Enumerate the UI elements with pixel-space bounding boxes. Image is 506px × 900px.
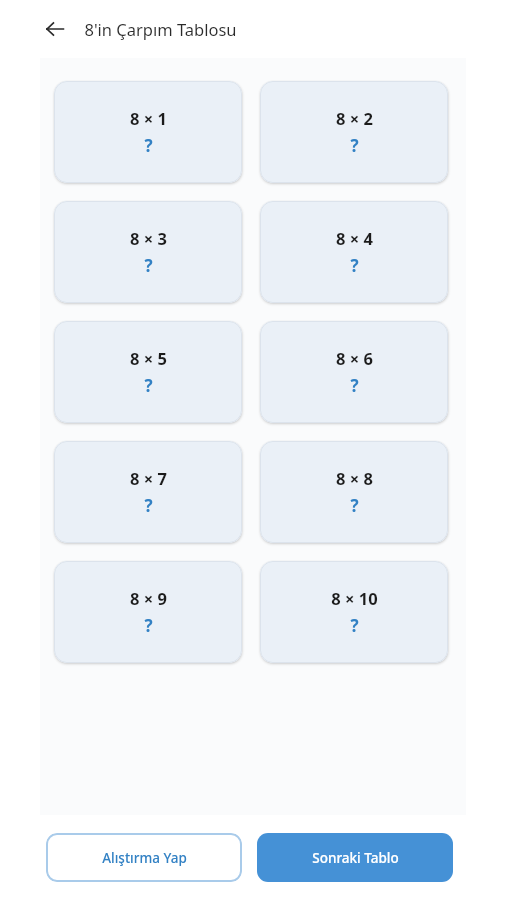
staticText: ? — [144, 254, 153, 277]
button[interactable]: Sonraki Tablo — [257, 833, 453, 882]
staticText: ? — [350, 254, 359, 277]
button[interactable]: 8 × 3 — [54, 201, 242, 303]
staticText: Alıştırma Yap — [102, 849, 187, 867]
button[interactable]: 8 × 8 — [260, 441, 448, 543]
button[interactable]: 8 × 4 — [260, 201, 448, 303]
button[interactable]: 8 × 9 — [54, 561, 242, 663]
staticText: ? — [350, 614, 359, 637]
staticText: ? — [350, 494, 359, 517]
staticText: ? — [350, 134, 359, 157]
staticText: 8 × 7 — [130, 467, 167, 489]
button[interactable]: Back — [36, 10, 74, 48]
staticText: ? — [144, 614, 153, 637]
button[interactable]: 8 × 1 — [54, 81, 242, 183]
staticText: ? — [350, 374, 359, 397]
staticText: 8'in Çarpım Tablosu — [84, 18, 237, 40]
staticText: ? — [144, 494, 153, 517]
staticText: 8 × 8 — [336, 467, 373, 489]
staticText: 8 × 4 — [336, 227, 373, 249]
button[interactable]: 8 × 5 — [54, 321, 242, 423]
button[interactable]: 8 × 6 — [260, 321, 448, 423]
button[interactable]: 8 × 10 — [260, 561, 448, 663]
staticText: 8 × 10 — [331, 587, 378, 609]
staticText: 8 × 2 — [336, 107, 373, 129]
button[interactable]: 8 × 7 — [54, 441, 242, 543]
button[interactable]: Alıştırma Yap — [46, 833, 242, 882]
button[interactable]: 8 × 2 — [260, 81, 448, 183]
staticText: 8 × 5 — [130, 347, 167, 369]
staticText: 8 × 9 — [130, 587, 167, 609]
staticText: Sonraki Tablo — [312, 849, 399, 867]
staticText: ? — [144, 134, 153, 157]
staticText: ? — [144, 374, 153, 397]
staticText: 8 × 1 — [130, 107, 167, 129]
staticText: 8 × 3 — [130, 227, 167, 249]
staticText: 8 × 6 — [336, 347, 373, 369]
